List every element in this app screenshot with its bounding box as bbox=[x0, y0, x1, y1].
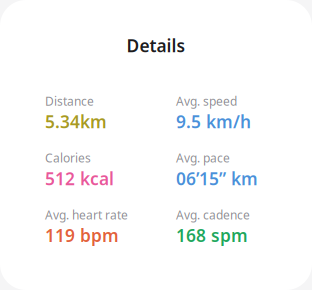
staticText: 9.5 km/h bbox=[176, 110, 251, 133]
staticText: 5.34km bbox=[45, 110, 107, 133]
staticText: Details bbox=[126, 34, 185, 57]
staticText: Avg. heart rate bbox=[45, 207, 128, 223]
staticText: Calories bbox=[45, 150, 91, 166]
staticText: Avg. pace bbox=[176, 150, 230, 166]
staticText: 119 bpm bbox=[45, 224, 119, 247]
staticText: Distance bbox=[45, 93, 94, 109]
button[interactable]: Calories bbox=[45, 150, 176, 190]
button[interactable]: Avg. heart rate bbox=[45, 207, 176, 247]
staticText: 512 kcal bbox=[45, 167, 114, 190]
button[interactable]: Avg. speed bbox=[176, 93, 307, 133]
staticText: Avg. cadence bbox=[176, 207, 250, 223]
button[interactable]: Distance bbox=[45, 93, 176, 133]
button[interactable]: Avg. cadence bbox=[176, 207, 307, 247]
staticText: Avg. speed bbox=[176, 93, 237, 109]
staticText: 168 spm bbox=[176, 224, 248, 247]
button[interactable]: Avg. pace bbox=[176, 150, 307, 190]
staticText: 06’15” km bbox=[176, 167, 258, 190]
